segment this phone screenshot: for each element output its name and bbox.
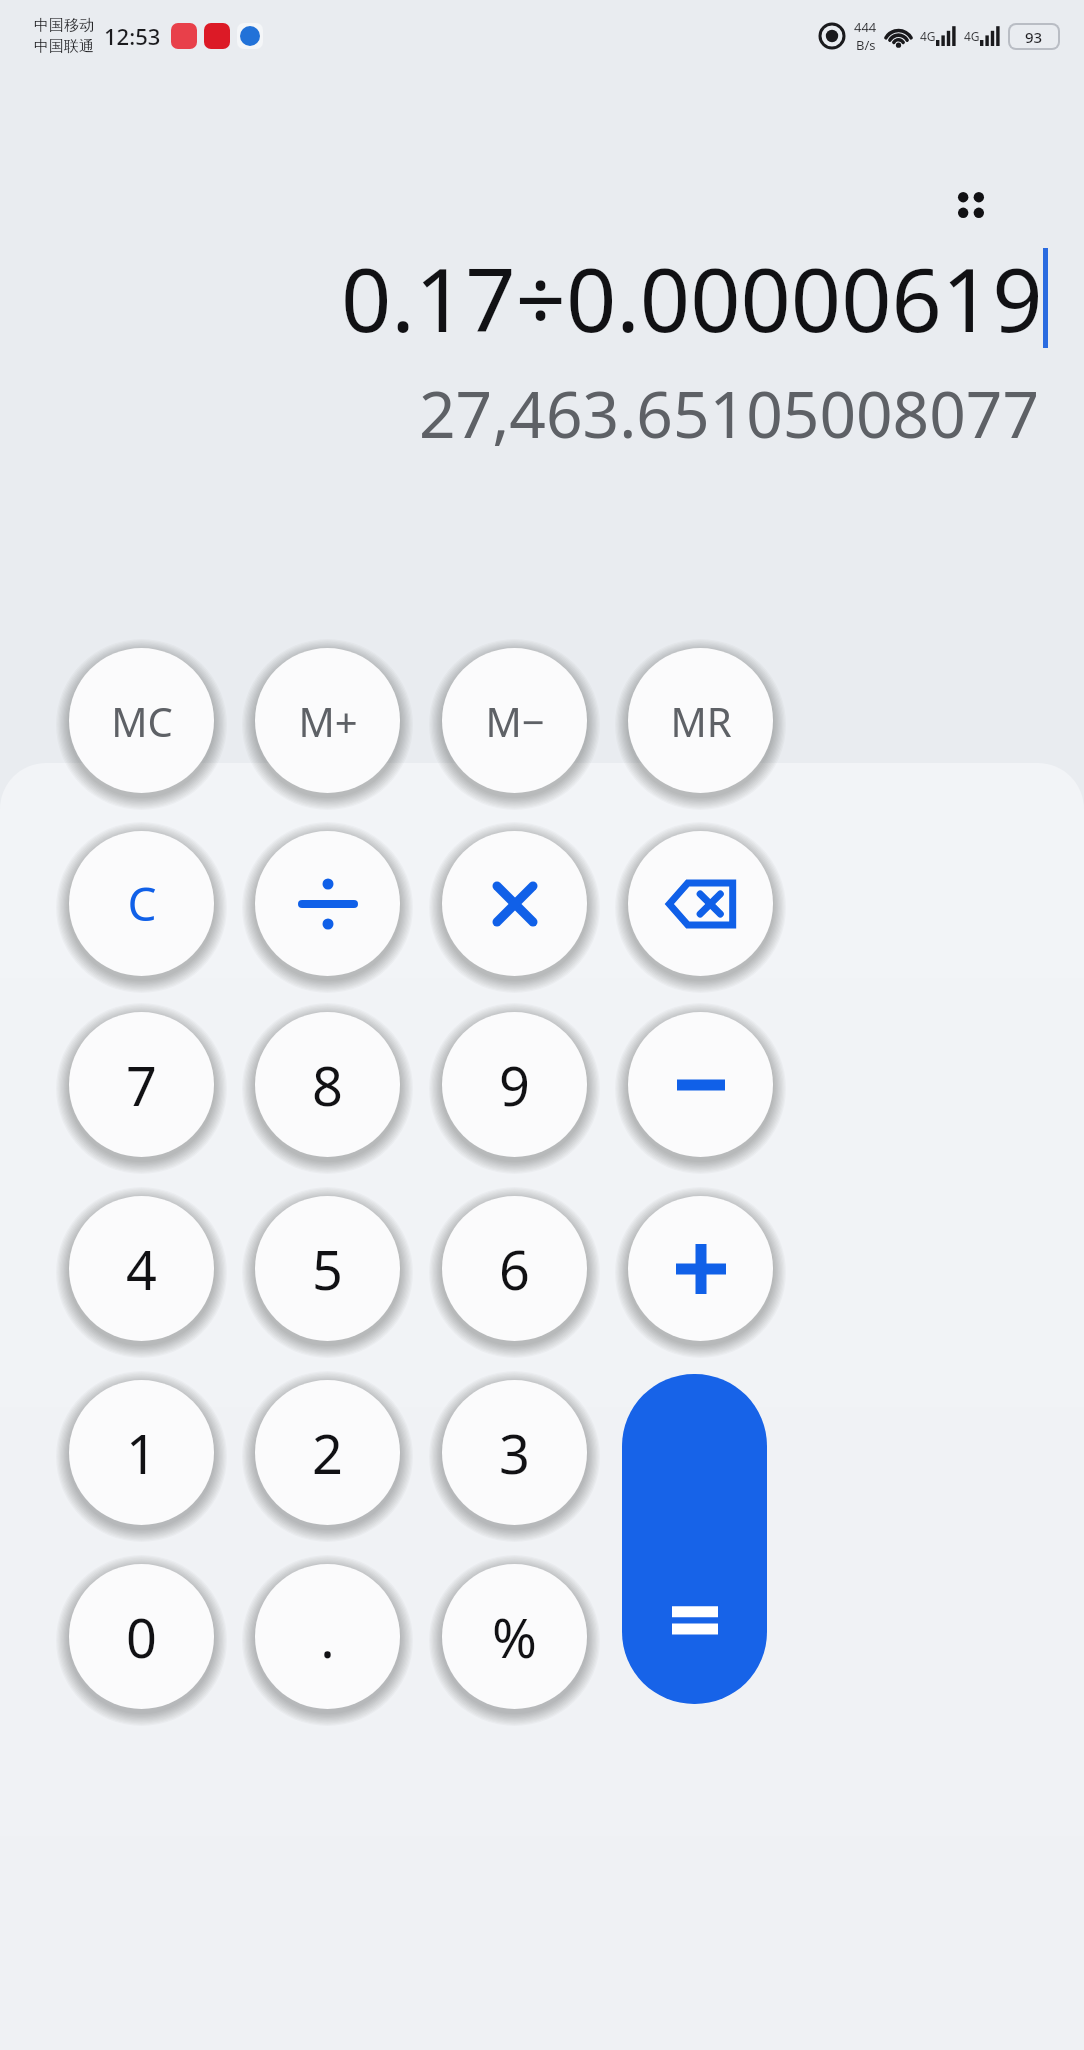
button[interactable]: MC [63, 642, 220, 799]
button[interactable]: 6 [436, 1190, 593, 1347]
staticText: 444 [854, 18, 877, 36]
button[interactable]: MR [622, 642, 779, 799]
staticText: 8 [312, 1048, 343, 1122]
staticText: MR [670, 694, 732, 748]
button[interactable]: 7 [63, 1006, 220, 1163]
staticText: 12:53 [104, 21, 161, 51]
button[interactable]: 2 [249, 1374, 406, 1531]
staticText: 3 [499, 1416, 530, 1490]
staticText: 6 [499, 1232, 530, 1306]
button[interactable]: 1 [63, 1374, 220, 1531]
staticText: 7 [126, 1048, 157, 1122]
button[interactable]: Minus [622, 1006, 779, 1163]
button[interactable]: 4 [63, 1190, 220, 1347]
button[interactable]: 5 [249, 1190, 406, 1347]
button[interactable]: Plus [622, 1190, 779, 1347]
staticText: 9 [499, 1048, 530, 1122]
button[interactable]: 0 [63, 1558, 220, 1715]
staticText: 0.17÷0.00000619 [341, 238, 1043, 358]
button[interactable]: 9 [436, 1006, 593, 1163]
button[interactable]: C [63, 825, 220, 982]
staticText: C [127, 872, 157, 935]
staticText: 1 [126, 1416, 157, 1490]
button[interactable]: Backspace [622, 825, 779, 982]
button[interactable]: . [249, 1558, 406, 1715]
button[interactable]: M+ [249, 642, 406, 799]
staticText: % [492, 1600, 537, 1674]
staticText: 27,463.65105008077 [419, 370, 1040, 457]
staticText: 中国移动 [34, 16, 94, 35]
button[interactable]: Multiply [436, 825, 593, 982]
staticText: 2 [312, 1416, 343, 1490]
button[interactable]: 8 [249, 1006, 406, 1163]
button[interactable]: M− [436, 642, 593, 799]
staticText: 4G [964, 28, 980, 44]
button[interactable]: Divide [249, 825, 406, 982]
staticText: 4G [920, 28, 936, 44]
staticText: B/s [856, 36, 876, 54]
staticText: MC [111, 694, 173, 748]
staticText: M+ [298, 694, 358, 748]
button[interactable]: 3 [436, 1374, 593, 1531]
staticText: M− [485, 694, 545, 748]
button[interactable]: Equals [622, 1374, 767, 1704]
button[interactable]: % [436, 1558, 593, 1715]
staticText: 中国联通 [34, 37, 94, 56]
staticText: 5 [312, 1232, 343, 1306]
staticText: . [320, 1600, 335, 1674]
staticText: 4 [126, 1232, 157, 1306]
staticText: 0 [126, 1600, 157, 1674]
staticText: 93 [1025, 27, 1043, 47]
button[interactable]: More options [916, 150, 1026, 260]
